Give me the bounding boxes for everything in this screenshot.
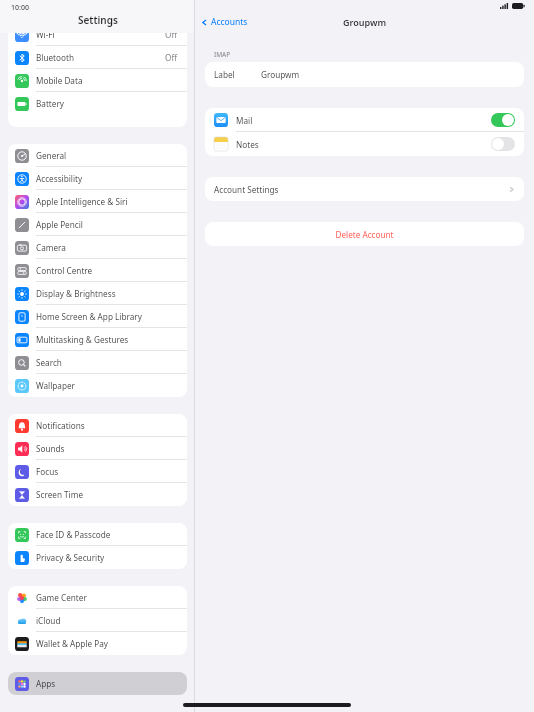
button[interactable]: Account Settings: [205, 177, 524, 201]
staticText: Delete Account: [335, 229, 394, 240]
staticText: Focus: [36, 466, 59, 477]
staticText: Multitasking & Gestures: [36, 334, 129, 345]
button[interactable]: Game Center: [8, 586, 187, 609]
button[interactable]: Sounds: [8, 437, 187, 460]
staticText: Account Settings: [214, 184, 279, 195]
button[interactable]: Mobile Data: [8, 69, 187, 92]
staticText: Groupwm: [261, 69, 300, 80]
button[interactable]: Apps: [8, 672, 187, 695]
button[interactable]: Wallet & Apple Pay: [8, 632, 187, 655]
button[interactable]: Screen Time: [8, 483, 187, 506]
staticText: Wallpaper: [36, 380, 75, 391]
button[interactable]: Notifications: [8, 414, 187, 437]
staticText: Apple Intelligence & Siri: [36, 196, 128, 207]
button[interactable]: Face ID & Passcode: [8, 523, 187, 546]
staticText: 10:00: [11, 3, 29, 13]
staticText: General: [36, 150, 67, 161]
staticText: Face ID & Passcode: [36, 529, 111, 540]
button[interactable]: Label: [205, 62, 524, 87]
staticText: Privacy & Security: [36, 552, 105, 563]
staticText: Search: [36, 357, 62, 368]
button[interactable]: Accessibility: [8, 167, 187, 190]
staticText: Sounds: [36, 443, 65, 454]
staticText: Settings: [78, 13, 118, 27]
button[interactable]: Camera: [8, 236, 187, 259]
staticText: Label: [214, 69, 235, 80]
button[interactable]: Toggle on: [491, 113, 515, 127]
button[interactable]: Bluetooth: [8, 46, 187, 69]
staticText: Accounts: [211, 16, 248, 28]
button[interactable]: Notes: [205, 132, 524, 156]
staticText: Wi-Fi: [36, 33, 55, 40]
button[interactable]: Display & Brightness: [8, 282, 187, 305]
button[interactable]: Wi-Fi: [8, 33, 187, 46]
button[interactable]: Mail: [205, 108, 524, 132]
button[interactable]: Control Centre: [8, 259, 187, 282]
staticText: Groupwm: [343, 16, 387, 28]
staticText: Battery: [36, 98, 65, 109]
button[interactable]: Privacy & Security: [8, 546, 187, 569]
staticText: Home Screen & App Library: [36, 311, 142, 322]
button[interactable]: Apple Pencil: [8, 213, 187, 236]
staticText: Camera: [36, 242, 66, 253]
staticText: Game Center: [36, 592, 87, 603]
button[interactable]: Focus: [8, 460, 187, 483]
button[interactable]: Toggle off: [491, 137, 515, 151]
staticText: Notes: [236, 139, 259, 150]
staticText: Notifications: [36, 420, 85, 431]
button[interactable]: Home Screen & App Library: [8, 305, 187, 328]
staticText: Apple Pencil: [36, 219, 83, 230]
staticText: Off: [165, 33, 178, 40]
staticText: Mobile Data: [36, 75, 83, 86]
staticText: Apps: [36, 678, 56, 689]
staticText: Off: [165, 52, 178, 63]
staticText: IMAP: [214, 50, 231, 59]
button[interactable]: Battery: [8, 92, 187, 115]
button[interactable]: Multitasking & Gestures: [8, 328, 187, 351]
staticText: Bluetooth: [36, 52, 74, 63]
button[interactable]: Apple Intelligence & Siri: [8, 190, 187, 213]
staticText: Control Centre: [36, 265, 93, 276]
button[interactable]: Delete Account: [205, 222, 524, 246]
staticText: Display & Brightness: [36, 288, 116, 299]
staticText: Screen Time: [36, 489, 84, 500]
button[interactable]: General: [8, 144, 187, 167]
button[interactable]: Search: [8, 351, 187, 374]
button[interactable]: Accounts: [201, 16, 248, 28]
staticText: Accessibility: [36, 173, 83, 184]
staticText: iCloud: [36, 615, 61, 626]
button[interactable]: iCloud: [8, 609, 187, 632]
staticText: Wallet & Apple Pay: [36, 638, 108, 649]
button[interactable]: Wallpaper: [8, 374, 187, 397]
staticText: Mail: [236, 115, 253, 126]
